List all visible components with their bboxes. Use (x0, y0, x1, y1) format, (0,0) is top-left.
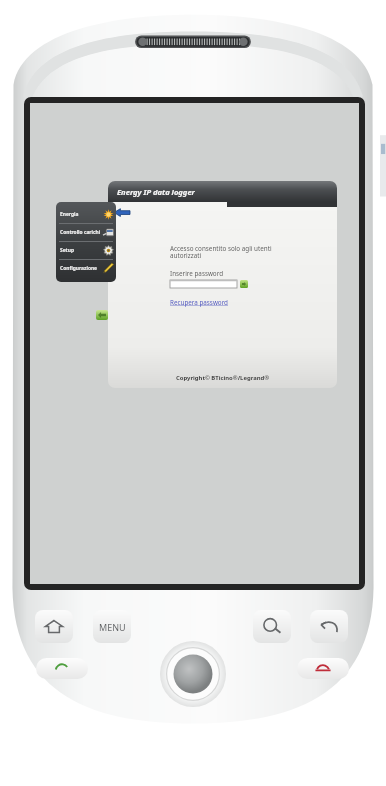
staticText: MENU (99, 621, 126, 633)
button[interactable]: Search (253, 610, 291, 643)
button[interactable]: Back (310, 610, 348, 643)
button[interactable]: MENU (93, 610, 131, 643)
button[interactable]: Back (114, 208, 130, 217)
staticText: Energy IP data logger (117, 187, 195, 197)
staticText: Accesso consentito solo agli utenti auto… (170, 244, 272, 260)
button[interactable]: End call (297, 658, 349, 679)
staticText: Configurazione (60, 265, 103, 272)
staticText: Inserire password (170, 269, 224, 278)
button[interactable]: Recupera password (170, 298, 228, 307)
staticText: Controllo carichi (60, 229, 103, 236)
button[interactable]: Submit password (240, 280, 248, 288)
staticText: Copyright© BTicino®/Legrand® (176, 374, 270, 382)
button[interactable]: Setup (56, 242, 116, 259)
button[interactable]: Call (36, 658, 88, 679)
button[interactable]: Trackball (160, 641, 226, 707)
button[interactable]: Home (35, 610, 73, 643)
staticText: Setup (60, 247, 103, 254)
button[interactable]: Configurazione (56, 260, 116, 277)
button[interactable] (170, 280, 237, 288)
button[interactable]: Energia (56, 206, 116, 223)
staticText: Energia (60, 211, 103, 218)
button[interactable]: Controllo carichi (56, 224, 116, 241)
button[interactable]: Login (96, 310, 108, 320)
staticText: Recupera password (170, 298, 228, 307)
